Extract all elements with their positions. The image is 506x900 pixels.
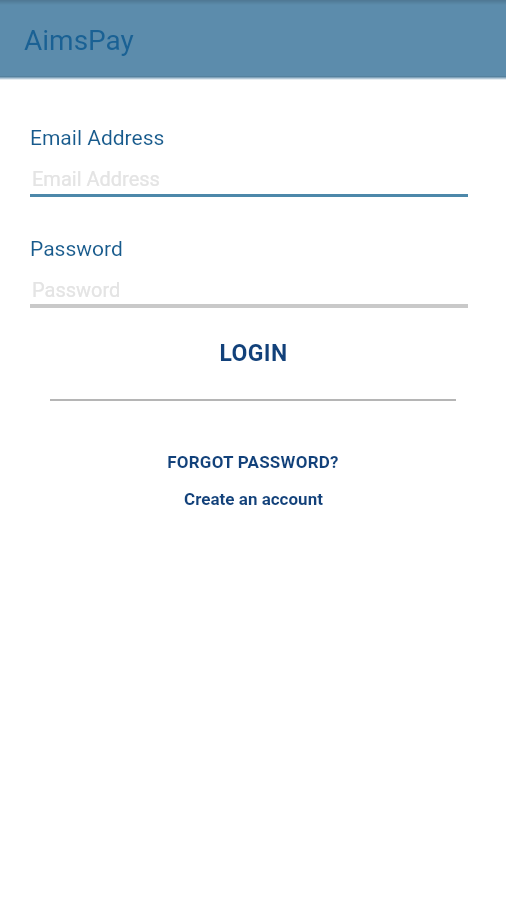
button[interactable]: Email Address input [0, 120, 506, 202]
staticText: Email Address [30, 126, 165, 151]
staticText: FORGOT PASSWORD? [167, 452, 339, 472]
staticText: Email Address [32, 167, 160, 190]
button[interactable]: Create an account [0, 478, 506, 518]
staticText: Password [32, 278, 121, 301]
staticText: Password [30, 237, 123, 262]
button[interactable]: FORGOT PASSWORD? [0, 441, 506, 481]
staticText: Create an account [184, 489, 323, 509]
button[interactable]: Password input [0, 231, 506, 313]
staticText: LOGIN [219, 340, 288, 367]
button[interactable]: LOGIN [0, 328, 506, 376]
staticText: AimsPay [24, 24, 134, 57]
